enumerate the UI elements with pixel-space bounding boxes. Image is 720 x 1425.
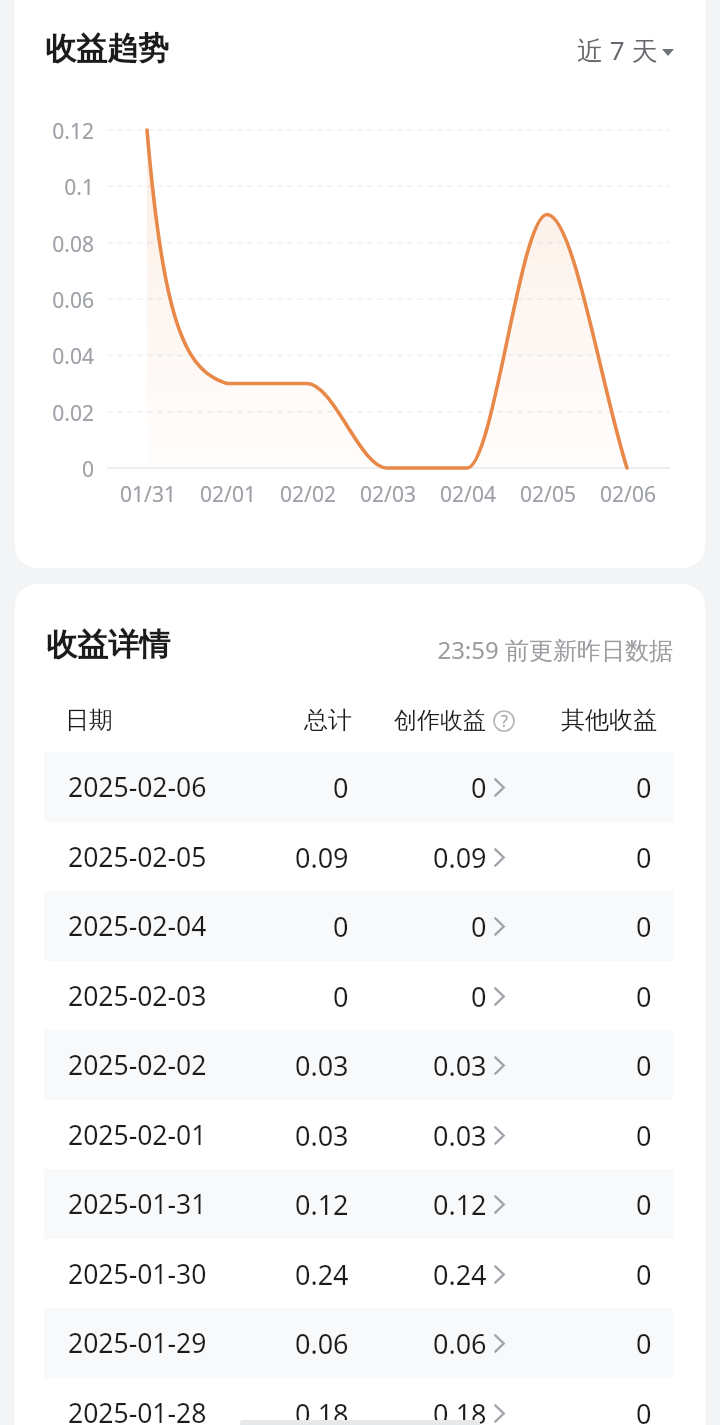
staticText: 0.18: [295, 1395, 349, 1425]
staticText: 2025-01-30: [68, 1256, 207, 1292]
staticText: 0.24: [295, 1256, 349, 1293]
staticText: 0: [636, 908, 652, 945]
button[interactable]: 近 7 天: [570, 25, 681, 75]
staticText: 其他收益: [561, 705, 657, 735]
staticText: 01/31: [98, 480, 198, 509]
staticText: 0: [636, 1395, 652, 1425]
staticText: 02/06: [578, 480, 678, 509]
staticText: 0.12: [433, 1186, 487, 1223]
staticText: 0.03: [433, 1047, 487, 1084]
button[interactable]: 2025-02-04: [44, 891, 673, 961]
staticText: 0.09: [433, 839, 487, 876]
staticText: 02/02: [258, 480, 358, 509]
staticText: 2025-02-04: [68, 908, 207, 944]
button[interactable]: 2025-01-31: [44, 1169, 673, 1239]
staticText: 02/01: [178, 480, 278, 509]
staticText: 2025-02-02: [68, 1047, 207, 1083]
button[interactable]: 2025-02-06: [44, 752, 673, 822]
staticText: 02/04: [418, 480, 518, 509]
staticText: 0: [471, 769, 487, 806]
staticText: 近 7 天: [577, 32, 658, 68]
staticText: 0.03: [295, 1047, 349, 1084]
staticText: 2025-01-31: [68, 1186, 207, 1222]
staticText: 日期: [65, 705, 113, 735]
staticText: 0: [471, 978, 487, 1015]
staticText: 0.12: [17, 117, 94, 146]
staticText: 02/03: [338, 480, 438, 509]
button[interactable]: 2025-01-29: [44, 1308, 673, 1378]
staticText: 0: [333, 908, 349, 945]
staticText: 0.09: [295, 839, 349, 876]
staticText: 0: [636, 1325, 652, 1362]
staticText: 0: [636, 1047, 652, 1084]
staticText: ?: [501, 710, 508, 732]
button[interactable]: 2025-01-28: [44, 1378, 673, 1425]
staticText: 0.04: [17, 342, 94, 371]
button[interactable]: 创作收益说明: [394, 706, 515, 735]
staticText: 0.24: [433, 1256, 487, 1293]
staticText: 0.02: [17, 399, 94, 428]
staticText: 创作收益: [394, 706, 486, 735]
staticText: 收益详情: [46, 625, 170, 664]
staticText: 0.03: [295, 1117, 349, 1154]
staticText: 0: [471, 908, 487, 945]
staticText: 2025-01-29: [68, 1325, 207, 1361]
staticText: 0: [636, 839, 652, 876]
staticText: 2025-02-03: [68, 978, 207, 1014]
button[interactable]: 2025-02-01: [44, 1100, 673, 1170]
staticText: 0: [636, 1117, 652, 1154]
staticText: 2025-02-06: [68, 769, 207, 805]
staticText: 0.12: [295, 1186, 349, 1223]
button[interactable]: 2025-02-05: [44, 822, 673, 892]
staticText: 2025-02-01: [68, 1117, 207, 1153]
staticText: 0: [636, 769, 652, 806]
staticText: 2025-02-05: [68, 839, 207, 875]
staticText: 0: [636, 1256, 652, 1293]
staticText: 2025-01-28: [68, 1395, 207, 1425]
staticText: 0.1: [17, 173, 94, 202]
staticText: 收益趋势: [45, 29, 169, 68]
staticText: 02/05: [498, 480, 598, 509]
staticText: 0: [636, 1186, 652, 1223]
staticText: 23:59 前更新昨日数据: [15, 633, 673, 666]
staticText: 0.08: [17, 230, 94, 259]
staticText: 0: [636, 978, 652, 1015]
staticText: 0.06: [433, 1325, 487, 1362]
button[interactable]: 2025-02-02: [44, 1030, 673, 1100]
staticText: 0.18: [433, 1395, 487, 1425]
button[interactable]: 2025-02-03: [44, 961, 673, 1031]
staticText: 0.06: [17, 286, 94, 315]
staticText: 0: [333, 769, 349, 806]
staticText: 0.06: [295, 1325, 349, 1362]
button[interactable]: 2025-01-30: [44, 1239, 673, 1309]
staticText: 总计: [304, 705, 352, 735]
staticText: 0.03: [433, 1117, 487, 1154]
staticText: 0: [17, 455, 94, 484]
staticText: 0: [333, 978, 349, 1015]
